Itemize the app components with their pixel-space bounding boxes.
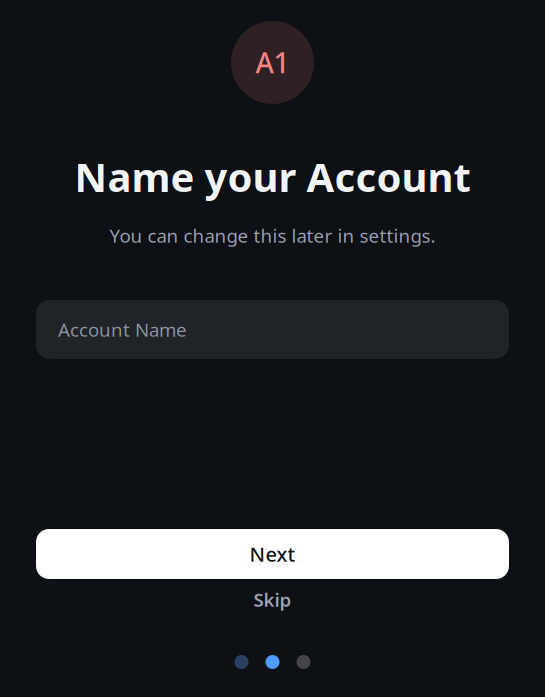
staticText: A1 [255,44,289,81]
staticText: Skip [253,587,291,612]
staticText: Name your Account [74,150,470,203]
staticText: Next [249,541,295,567]
staticText: You can change this later in settings. [109,223,435,248]
staticText: Account Name [58,317,187,342]
button[interactable]: Skip [36,579,509,620]
button[interactable]: Account Name [36,300,509,359]
button[interactable]: Next [36,529,509,579]
